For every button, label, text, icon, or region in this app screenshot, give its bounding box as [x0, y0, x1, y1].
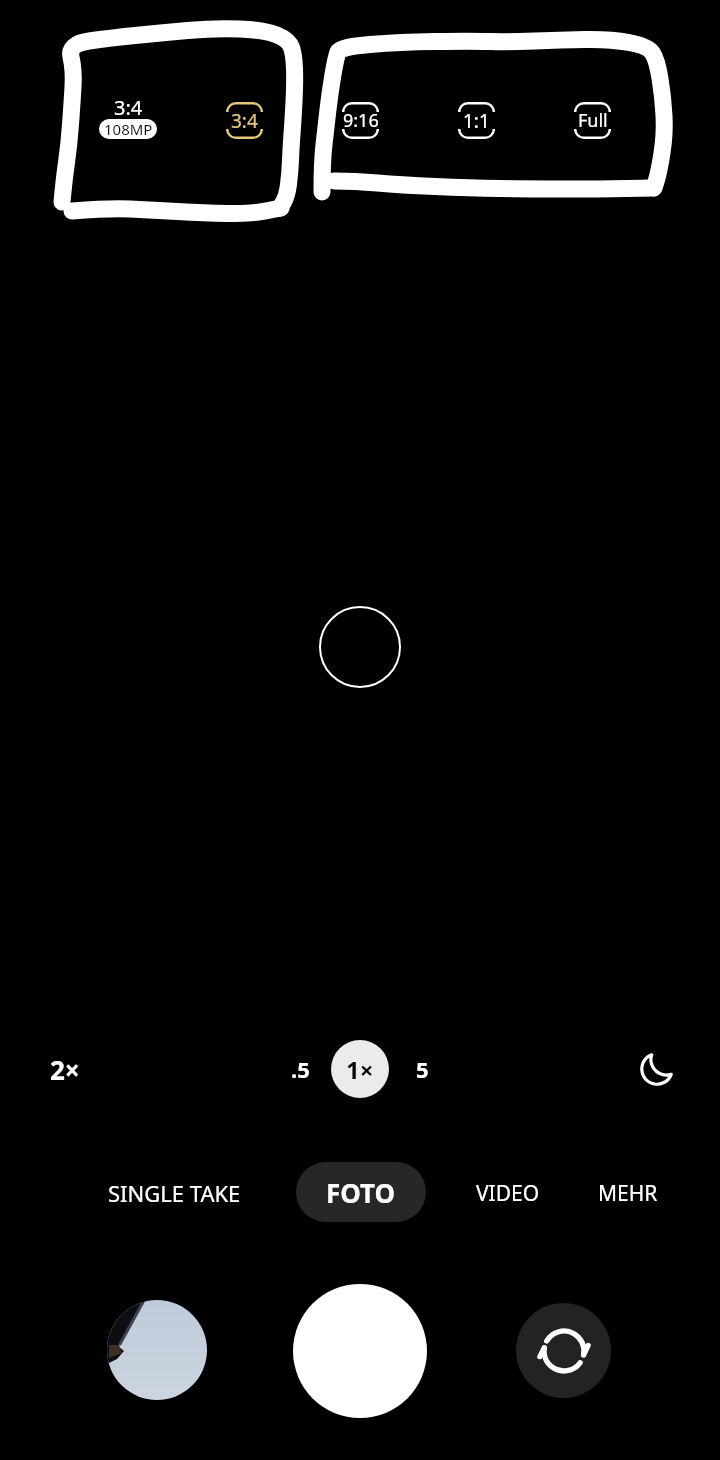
staticText: SINGLE TAKE	[108, 1178, 241, 1208]
button[interactable]: FOTO	[296, 1162, 426, 1222]
staticText: 9:16	[343, 108, 379, 133]
staticText: .5	[291, 1054, 310, 1084]
staticText: 3:4	[114, 94, 143, 121]
button[interactable]: 2×	[30, 1040, 100, 1098]
button[interactable]: Night mode	[628, 1040, 686, 1098]
button[interactable]: 1×	[331, 1040, 389, 1098]
staticText: 1×	[346, 1053, 374, 1086]
staticText: Full	[578, 108, 608, 133]
button[interactable]: 5	[400, 1045, 444, 1093]
button[interactable]: Switch camera	[516, 1303, 611, 1398]
staticText: 3:4	[231, 108, 258, 134]
button[interactable]: 3:4	[226, 102, 263, 139]
staticText: VIDEO	[476, 1179, 540, 1208]
button[interactable]: 9:16	[342, 102, 379, 139]
button[interactable]: MEHR	[590, 1172, 666, 1214]
staticText: 2×	[50, 1052, 80, 1087]
button[interactable]: Gallery	[107, 1300, 207, 1400]
button[interactable]: Shutter	[293, 1284, 427, 1418]
staticText: 5	[416, 1054, 429, 1084]
button[interactable]: .5	[278, 1045, 322, 1093]
staticText: 1:1	[463, 108, 490, 134]
button[interactable]: 108MP	[99, 119, 157, 139]
button[interactable]: VIDEO	[470, 1172, 546, 1214]
staticText: 108MP	[104, 119, 153, 139]
button[interactable]: Full	[574, 102, 611, 139]
staticText: MEHR	[598, 1179, 658, 1208]
button[interactable]: 1:1	[458, 102, 495, 139]
staticText: FOTO	[326, 1175, 396, 1210]
button[interactable]: SINGLE TAKE	[100, 1172, 248, 1214]
